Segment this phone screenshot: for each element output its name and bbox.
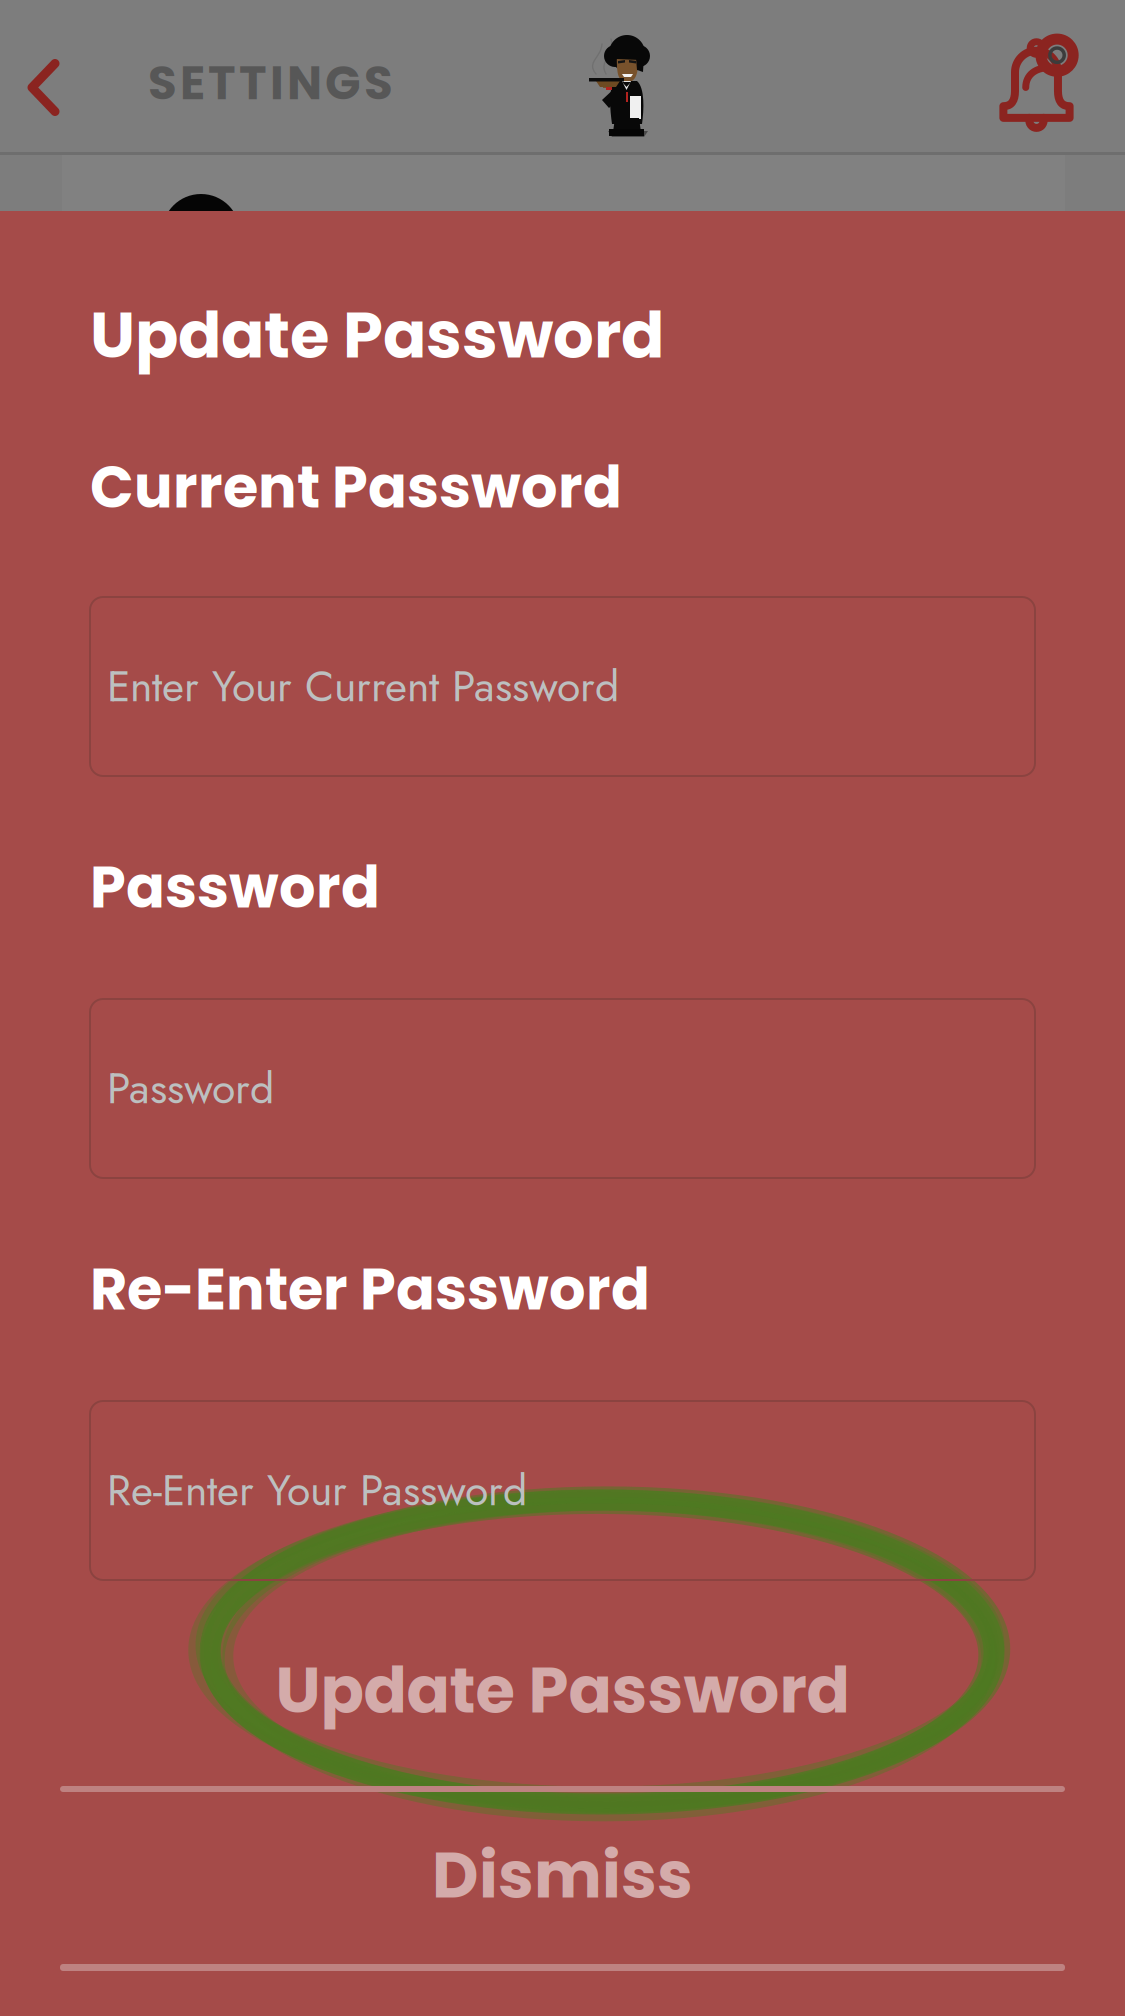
button[interactable]: Notifications [941, 13, 1125, 163]
staticText: Enter Your Current Password [107, 656, 619, 717]
staticText: Re-Enter Password [90, 1249, 650, 1330]
button[interactable]: Password [90, 999, 1035, 1178]
button[interactable]: Re-Enter Your Password [90, 1401, 1035, 1580]
button[interactable]: Dismiss [0, 1829, 1125, 1921]
staticText: Update Password [275, 1645, 849, 1735]
staticText: Update Password [90, 290, 664, 380]
staticText: Current Password [90, 447, 622, 528]
staticText: SETTINGS [148, 50, 393, 116]
staticText: Password [107, 1058, 274, 1119]
button[interactable]: Back [0, 0, 88, 176]
staticText: Password [90, 847, 380, 928]
staticText: Re-Enter Your Password [107, 1460, 527, 1521]
button[interactable]: Enter Your Current Password [90, 597, 1035, 776]
button[interactable]: Update Password [0, 1644, 1125, 1736]
staticText: Dismiss [432, 1830, 693, 1920]
